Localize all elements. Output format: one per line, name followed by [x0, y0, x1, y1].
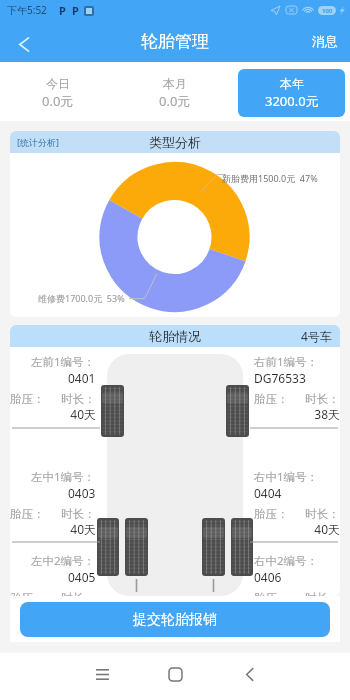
staticText: 38天 [254, 406, 340, 422]
button[interactable]: 本年 [238, 69, 345, 117]
staticText: 新胎费用1500.0元 47% [222, 172, 318, 184]
staticText: 类型分析 [149, 134, 201, 150]
staticText: [统计分析] [17, 136, 59, 148]
staticText: 时长： [61, 591, 96, 596]
staticText: 维修费1700.0元 53% [38, 292, 125, 304]
staticText: 轮胎情况 [149, 328, 201, 344]
staticText: 100 [322, 7, 333, 15]
button[interactable]: 今日 [5, 69, 111, 117]
button[interactable]: Home [154, 653, 196, 695]
staticText: 今日 [46, 76, 70, 91]
staticText: P [72, 3, 79, 18]
staticText: 胎压： [254, 591, 289, 596]
staticText: 胎压： [10, 392, 45, 406]
staticText: 40天 [10, 521, 96, 537]
staticText: 本月 [163, 76, 187, 91]
button[interactable]: Recent apps [81, 653, 123, 695]
staticText: 0.0元 [159, 92, 191, 110]
staticText: 时长： [61, 392, 96, 406]
button[interactable]: 消息 [300, 25, 350, 57]
button[interactable]: 提交轮胎报销 [20, 602, 330, 637]
staticText: 3200.0元 [265, 92, 319, 110]
staticText: P [59, 3, 66, 18]
staticText: 下午5:52 [7, 3, 47, 17]
staticText: 右中2编号： [254, 553, 319, 569]
staticText: 40天 [10, 406, 96, 422]
staticText: 胎压： [10, 507, 45, 521]
staticText: 右前1编号： [254, 354, 319, 370]
staticText: 40天 [254, 521, 340, 537]
staticText: 轮胎管理 [141, 31, 209, 52]
button[interactable]: Back [228, 653, 270, 695]
staticText: 提交轮胎报销 [133, 611, 217, 629]
staticText: 4号车 [301, 328, 332, 344]
staticText: 0401 [68, 370, 96, 386]
staticText: 右中1编号： [254, 469, 319, 485]
staticText: 胎压： [254, 507, 289, 521]
staticText: 左中1编号： [31, 469, 96, 485]
staticText: 0405 [68, 569, 96, 585]
staticText: 左中2编号： [31, 553, 96, 569]
staticText: 时长： [61, 507, 96, 521]
staticText: 时长： [305, 507, 340, 521]
button[interactable]: 本月 [121, 69, 228, 117]
staticText: DG76533 [254, 370, 306, 386]
button[interactable]: Back [4, 24, 44, 64]
staticText: 胎压： [254, 392, 289, 406]
staticText: 0.0元 [42, 92, 74, 110]
staticText: 0406 [254, 569, 282, 585]
staticText: 0403 [68, 485, 96, 501]
staticText: 0404 [254, 485, 282, 501]
staticText: 消息 [312, 33, 338, 49]
staticText: 左前1编号： [31, 354, 96, 370]
staticText: 时长： [305, 591, 340, 596]
staticText: 胎压： [10, 591, 45, 596]
staticText: 时长： [305, 392, 340, 406]
staticText: 本年 [280, 76, 304, 91]
